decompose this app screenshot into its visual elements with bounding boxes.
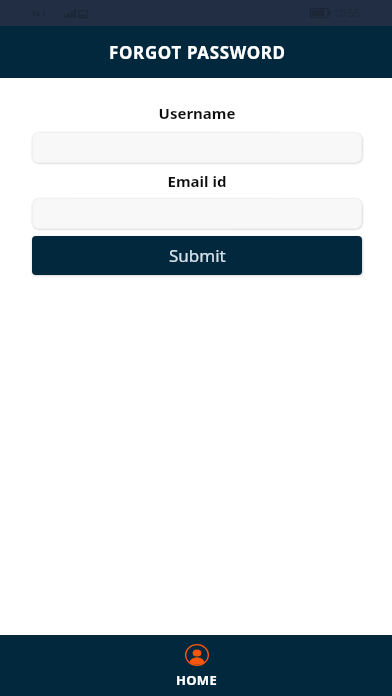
staticText: Username [32, 103, 362, 123]
staticText: HOME [176, 671, 217, 689]
staticText: FORGOT PASSWORD [109, 41, 286, 64]
staticText: Email id [32, 171, 362, 191]
other: Home [185, 644, 209, 666]
staticText: Submit [169, 244, 226, 267]
button[interactable]: Submit [32, 236, 362, 275]
button[interactable]: Home [152, 638, 241, 694]
staticText: 10:56 [334, 6, 360, 20]
